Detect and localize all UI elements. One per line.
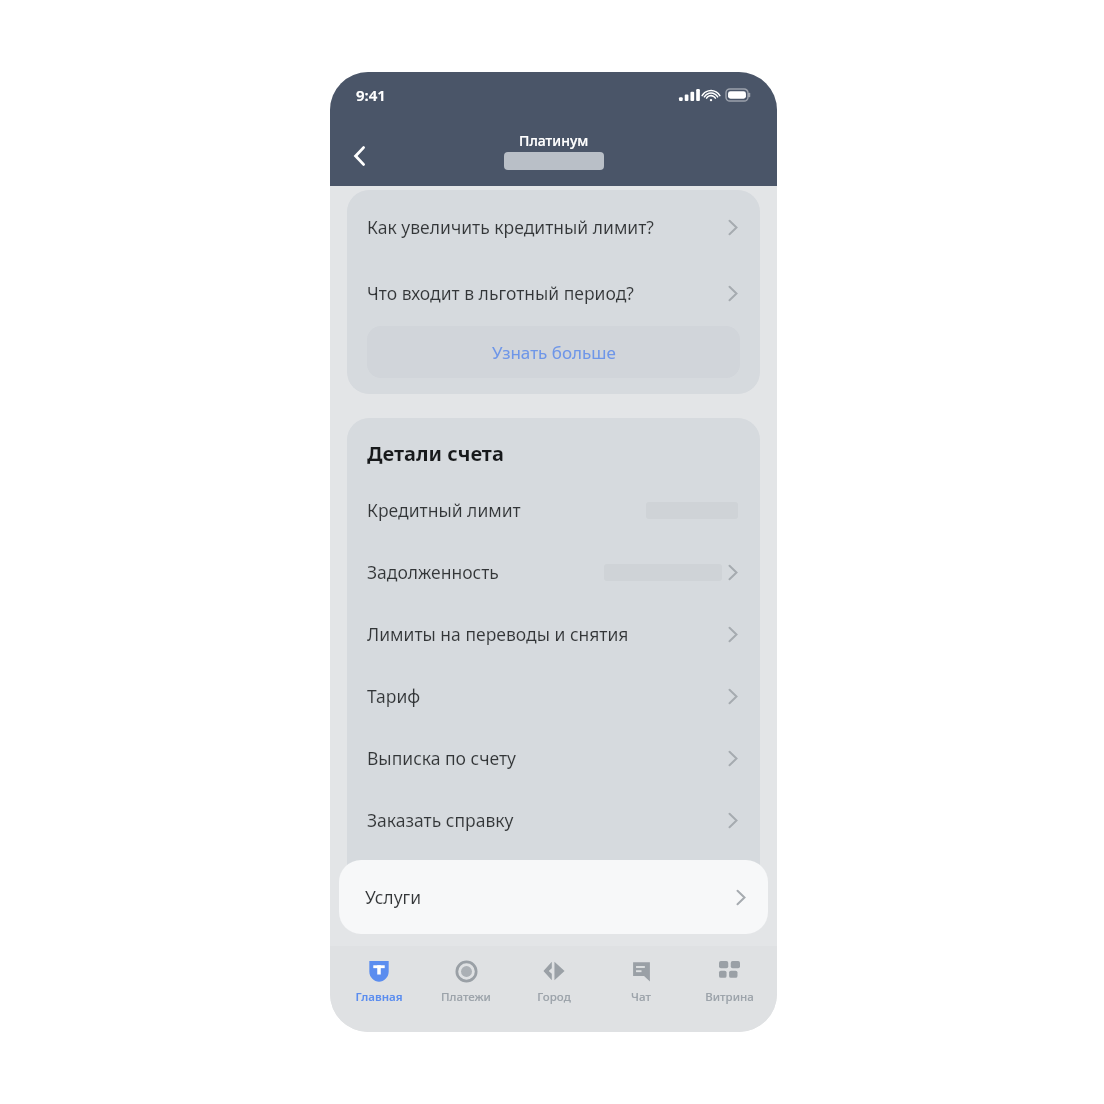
staticText: Город [537, 989, 571, 1005]
staticText: Как увеличить кредитный лимит? [367, 215, 728, 239]
staticText: Выписка по счету [367, 746, 728, 770]
button[interactable]: Что входит в льготный период? [347, 260, 760, 326]
button[interactable]: Город [515, 946, 593, 1032]
button[interactable]: Тариф [347, 665, 760, 727]
staticText: Платежи [441, 989, 491, 1005]
staticText: Задолженность [367, 560, 604, 584]
button[interactable]: Узнать больше [367, 326, 740, 378]
button[interactable]: Как увеличить кредитный лимит? [347, 194, 760, 260]
staticText: 9:41 [356, 85, 386, 105]
staticText: Услуги [365, 885, 736, 909]
button[interactable]: Чат [602, 946, 680, 1032]
button[interactable]: Главная [340, 946, 418, 1032]
staticText: Чат [631, 989, 651, 1005]
staticText: Главная [355, 989, 403, 1005]
staticText: Витрина [705, 989, 754, 1005]
button[interactable]: Витрина [690, 946, 768, 1032]
button[interactable]: Задолженность [347, 541, 760, 603]
staticText: Тариф [367, 684, 728, 708]
button[interactable]: Back [338, 134, 382, 178]
button[interactable]: Заказать справку [347, 789, 760, 851]
button[interactable]: Выписка по счету [347, 727, 760, 789]
button[interactable]: Кредитный лимит [347, 479, 760, 541]
staticText: Кредитный лимит [367, 498, 646, 522]
button[interactable]: Услуги [339, 860, 768, 934]
button[interactable]: Лимиты на переводы и снятия [347, 603, 760, 665]
staticText: Платинум [519, 131, 589, 150]
staticText: Лимиты на переводы и снятия [367, 622, 728, 646]
staticText: Узнать больше [492, 341, 616, 364]
staticText: Заказать справку [367, 808, 728, 832]
staticText: Что входит в льготный период? [367, 281, 728, 305]
staticText: Детали счета [367, 440, 504, 467]
button[interactable]: Платежи [427, 946, 505, 1032]
